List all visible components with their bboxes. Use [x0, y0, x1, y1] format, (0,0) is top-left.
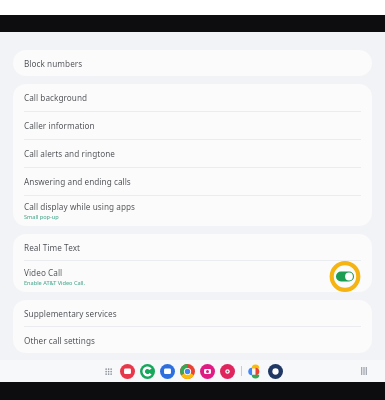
button[interactable]: Messages	[120, 364, 135, 379]
button[interactable]: Supplementary services	[13, 300, 372, 326]
staticText: Small pop-up	[24, 213, 59, 221]
staticText: Answering and ending calls	[24, 176, 131, 187]
button[interactable]: Video Call	[13, 261, 372, 292]
button[interactable]: Enable AT&T Video Call toggle	[326, 261, 364, 292]
staticText: Enable AT&T Video Call.	[24, 279, 85, 287]
button[interactable]: Recent apps	[357, 364, 371, 378]
button[interactable]: Gallery	[220, 364, 235, 379]
button[interactable]: Call display while using apps	[13, 196, 372, 226]
button[interactable]: Block numbers	[13, 50, 372, 76]
staticText: Call background	[24, 92, 88, 103]
button[interactable]: Call background	[13, 84, 372, 111]
staticText: Caller information	[24, 120, 95, 131]
button[interactable]: Camera	[200, 364, 215, 379]
staticText: Real Time Text	[24, 242, 81, 253]
staticText: Call alerts and ringtone	[24, 148, 116, 159]
button[interactable]: All apps	[102, 365, 115, 378]
button[interactable]: Call alerts and ringtone	[13, 140, 372, 167]
staticText: Other call settings	[24, 335, 95, 346]
button[interactable]: Caller information	[13, 112, 372, 139]
staticText: Supplementary services	[24, 308, 117, 319]
staticText: Video Call	[24, 267, 63, 278]
button[interactable]: Real Time Text	[13, 234, 372, 260]
button[interactable]: Google Chrome	[180, 364, 195, 379]
staticText: Call display while using apps	[24, 201, 136, 212]
button[interactable]: Messages	[160, 364, 175, 379]
button[interactable]: Settings	[268, 364, 283, 379]
button[interactable]: Answering and ending calls	[13, 168, 372, 195]
staticText: Block numbers	[24, 58, 83, 69]
button[interactable]: Other call settings	[13, 327, 372, 353]
button[interactable]: Phone	[140, 364, 155, 379]
button[interactable]: Google Photos	[248, 364, 263, 379]
